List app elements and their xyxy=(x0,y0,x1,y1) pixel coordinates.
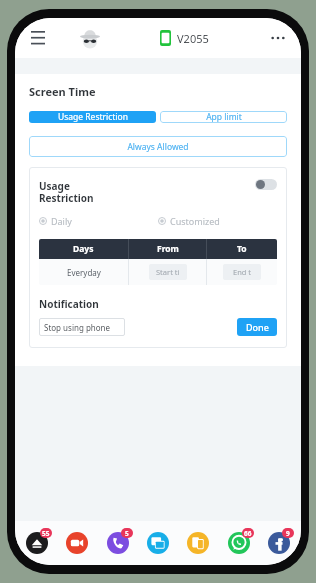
staticText: V2055 xyxy=(177,31,209,46)
staticText: End t xyxy=(233,267,252,277)
button[interactable]: Files xyxy=(184,528,212,558)
button[interactable]: More options xyxy=(267,27,289,49)
staticText: Everyday xyxy=(67,267,101,278)
staticText: Screen Time xyxy=(29,84,96,99)
button[interactable]: Phone xyxy=(104,528,132,558)
button[interactable]: Messages xyxy=(144,528,172,558)
button[interactable]: End t xyxy=(223,264,261,280)
staticText: Days xyxy=(73,243,94,255)
button[interactable]: Facebook xyxy=(265,528,293,558)
button[interactable]: Customized xyxy=(158,215,277,227)
staticText: Notification xyxy=(39,297,99,311)
staticText: 9 xyxy=(286,529,290,538)
staticText: Done xyxy=(246,321,269,333)
staticText: Always Allowed xyxy=(127,141,189,153)
button[interactable]: Updates xyxy=(23,528,51,558)
button[interactable]: Video call xyxy=(63,528,91,558)
staticText: Usage Restriction xyxy=(39,179,255,205)
button[interactable]: Usage restriction toggle xyxy=(255,179,277,190)
button[interactable]: App limit xyxy=(160,111,287,123)
staticText: 55 xyxy=(42,529,50,538)
staticText: Stop using phone xyxy=(44,322,111,333)
staticText: App limit xyxy=(206,111,242,123)
button[interactable]: Done xyxy=(237,318,277,336)
staticText: Daily xyxy=(51,215,72,227)
button[interactable]: Menu xyxy=(27,27,49,49)
staticText: 66 xyxy=(244,529,252,538)
staticText: Usage Restriction xyxy=(58,111,128,123)
button[interactable]: Start ti xyxy=(149,264,187,280)
button[interactable]: Stop using phone xyxy=(39,318,125,336)
button[interactable]: WhatsApp xyxy=(225,528,253,558)
button[interactable]: Incognito profile xyxy=(77,25,103,51)
staticText: Customized xyxy=(170,215,220,227)
button[interactable]: Daily xyxy=(39,215,158,227)
staticText: Start ti xyxy=(156,267,180,277)
staticText: 5 xyxy=(125,529,129,538)
button[interactable]: Always Allowed xyxy=(29,136,287,157)
button[interactable]: V2055 xyxy=(160,30,209,46)
staticText: From xyxy=(157,243,179,255)
button[interactable]: Usage Restriction xyxy=(29,111,156,123)
staticText: To xyxy=(237,243,247,255)
